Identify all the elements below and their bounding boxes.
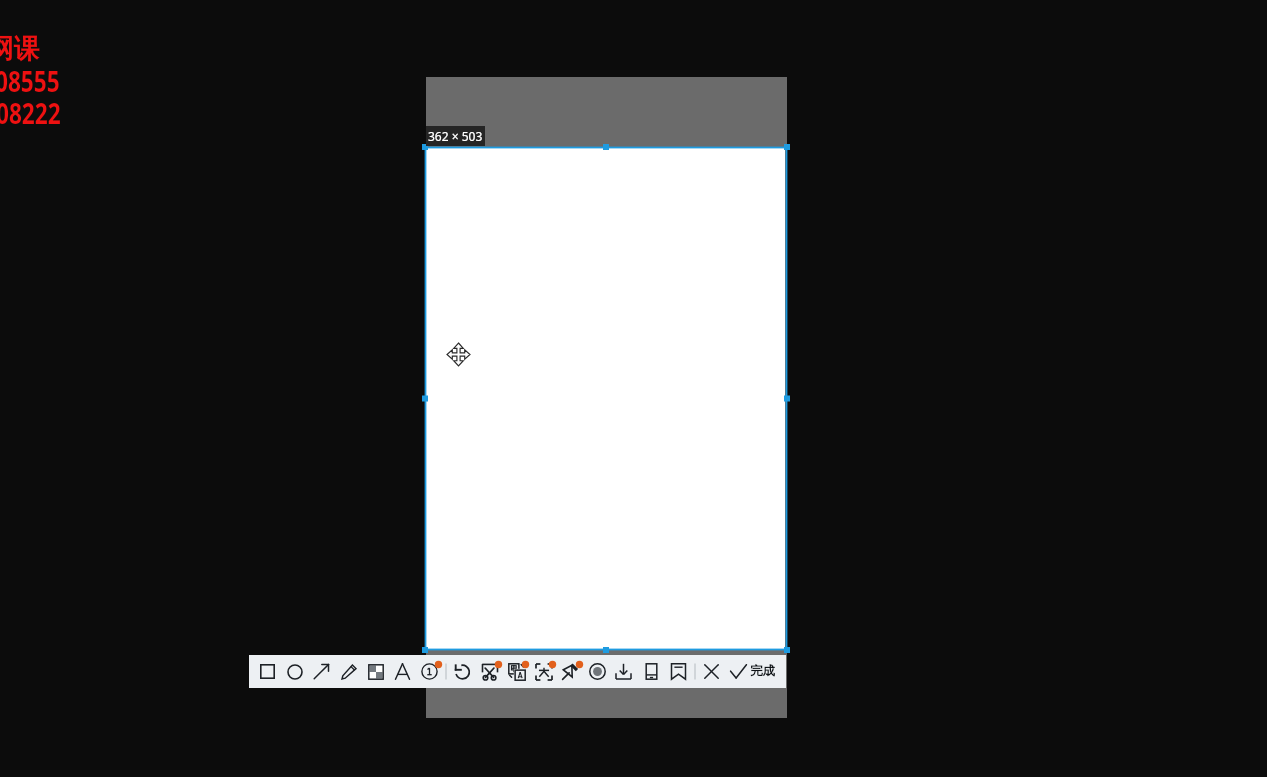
button[interactable]: Arrow bbox=[308, 655, 335, 688]
staticText: 108222 bbox=[0, 93, 61, 132]
button[interactable]: Pin bbox=[557, 655, 584, 688]
button[interactable]: Cancel bbox=[698, 655, 725, 688]
button[interactable]: Bookmark bbox=[665, 655, 692, 688]
button[interactable]: Text bbox=[389, 655, 416, 688]
button[interactable]: Translate bbox=[503, 655, 530, 688]
button[interactable]: Cut bbox=[476, 655, 503, 688]
button[interactable]: Confirm bbox=[725, 655, 752, 688]
staticText: 完成 bbox=[750, 663, 775, 679]
button[interactable]: Pen bbox=[335, 655, 362, 688]
button[interactable]: Ellipse bbox=[281, 655, 308, 688]
button[interactable]: Record bbox=[584, 655, 611, 688]
button[interactable]: Mosaic bbox=[362, 655, 389, 688]
button[interactable]: Extract text bbox=[530, 655, 557, 688]
staticText: 362 × 503 bbox=[428, 128, 483, 144]
button[interactable]: Rectangle bbox=[254, 655, 281, 688]
staticText: 108555 bbox=[0, 61, 60, 100]
staticText: 网课 bbox=[0, 32, 39, 66]
button[interactable]: Selected capture region bbox=[426, 148, 785, 649]
button[interactable]: Save bbox=[610, 655, 637, 688]
button[interactable]: 完成 bbox=[746, 654, 779, 687]
button[interactable]: Serial number bbox=[416, 655, 443, 688]
button[interactable]: Send to phone bbox=[638, 655, 665, 688]
button[interactable]: Undo bbox=[449, 655, 476, 688]
